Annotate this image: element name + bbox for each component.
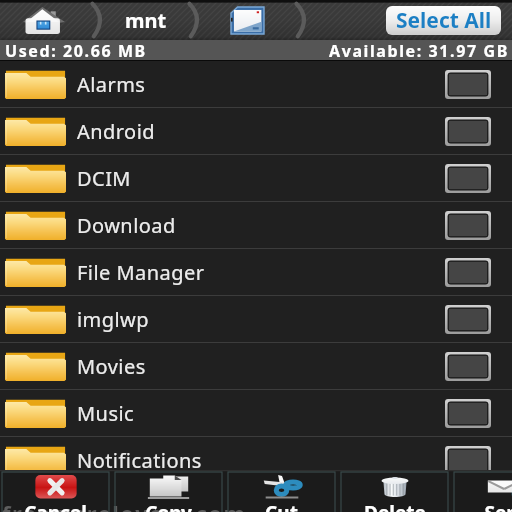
- staticText: Android: [77, 118, 156, 145]
- button[interactable]: Notifications: [0, 437, 512, 483]
- staticText: Used: 20.66 MB: [5, 40, 147, 60]
- button[interactable]: Send: [454, 472, 512, 512]
- staticText: Notifications: [77, 447, 202, 474]
- button[interactable]: Select imglwp: [445, 305, 491, 334]
- button[interactable]: DCIM: [0, 155, 512, 201]
- button[interactable]: Select DCIM: [445, 164, 491, 193]
- button[interactable]: Delete: [341, 472, 448, 512]
- staticText: Select All: [396, 6, 492, 35]
- button[interactable]: Select Music: [445, 399, 491, 428]
- button[interactable]: Select All: [386, 6, 501, 35]
- staticText: Cut: [265, 500, 298, 512]
- button[interactable]: Copy: [115, 472, 222, 512]
- button[interactable]: Android: [0, 108, 512, 154]
- button[interactable]: mnt: [112, 0, 180, 40]
- button[interactable]: imglwp: [0, 296, 512, 342]
- button[interactable]: Movies: [0, 343, 512, 389]
- staticText: freewarelovers.com: [2, 498, 247, 512]
- staticText: imglwp: [77, 306, 150, 333]
- button[interactable]: File Manager: [0, 249, 512, 295]
- staticText: DCIM: [77, 165, 131, 192]
- button[interactable]: Cancel: [2, 472, 109, 512]
- staticText: Music: [77, 400, 135, 427]
- button[interactable]: Select Movies: [445, 352, 491, 381]
- staticText: Movies: [77, 353, 146, 380]
- button[interactable]: Cut: [228, 472, 335, 512]
- button[interactable]: Alarms: [0, 61, 512, 107]
- staticText: Available: 31.97 GB: [329, 40, 509, 60]
- staticText: File Manager: [77, 259, 205, 286]
- staticText: Delete: [364, 500, 426, 512]
- button[interactable]: Music: [0, 390, 512, 436]
- button[interactable]: Select File Manager: [445, 258, 491, 287]
- button[interactable]: Select Download: [445, 211, 491, 240]
- button[interactable]: Select Android: [445, 117, 491, 146]
- button[interactable]: SD card: [217, 0, 277, 40]
- staticText: Alarms: [77, 71, 146, 98]
- staticText: Cancel: [24, 500, 87, 512]
- button[interactable]: Home: [10, 0, 80, 40]
- staticText: Copy: [145, 500, 192, 512]
- staticText: mnt: [125, 7, 167, 34]
- staticText: Send: [484, 500, 512, 512]
- button[interactable]: Select Alarms: [445, 70, 491, 99]
- staticText: Download: [77, 212, 176, 239]
- button[interactable]: Select Notifications: [445, 446, 491, 475]
- button[interactable]: Download: [0, 202, 512, 248]
